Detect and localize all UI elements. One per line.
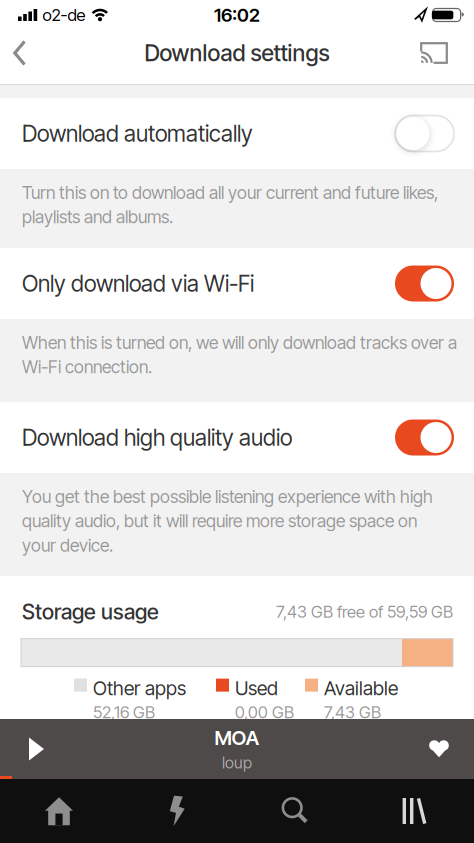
- button[interactable]: Search: [236, 779, 355, 843]
- staticText: Turn this on to download all your curren…: [22, 182, 438, 228]
- staticText: When this is turned on, we will only dow…: [22, 332, 457, 378]
- staticText: 7,43 GB: [324, 702, 381, 722]
- staticText: 52,16 GB: [93, 702, 155, 722]
- button[interactable]: Library: [355, 779, 474, 843]
- button[interactable]: Download high quality audio: [395, 419, 454, 455]
- button[interactable]: Now playing: MOA by loup: [0, 719, 474, 779]
- button[interactable]: Only download via Wi-Fi: [395, 265, 454, 301]
- button[interactable]: Play: [0, 737, 44, 760]
- button[interactable]: Download automatically: [395, 115, 454, 151]
- button[interactable]: Like: [429, 740, 474, 758]
- staticText: 7,43 GB free of 59,59 GB: [276, 602, 453, 622]
- staticText: Other apps: [93, 677, 186, 700]
- button[interactable]: Home: [0, 779, 118, 843]
- button[interactable]: Feed: [118, 779, 236, 843]
- staticText: Used: [235, 677, 278, 700]
- staticText: o2-de: [42, 5, 85, 25]
- button[interactable]: Back: [0, 40, 27, 66]
- staticText: loup: [222, 753, 252, 772]
- staticText: Download settings: [144, 39, 329, 67]
- staticText: MOA: [214, 726, 259, 750]
- staticText: Download automatically: [22, 120, 253, 147]
- staticText: Available: [324, 677, 398, 700]
- staticText: Storage usage: [22, 599, 159, 625]
- staticText: 0,00 GB: [235, 702, 294, 722]
- button[interactable]: Cast: [420, 42, 474, 64]
- staticText: Only download via Wi-Fi: [22, 270, 254, 297]
- staticText: You get the best possible listening expe…: [22, 486, 433, 556]
- staticText: 16:02: [214, 4, 260, 26]
- staticText: Download high quality audio: [22, 424, 292, 451]
